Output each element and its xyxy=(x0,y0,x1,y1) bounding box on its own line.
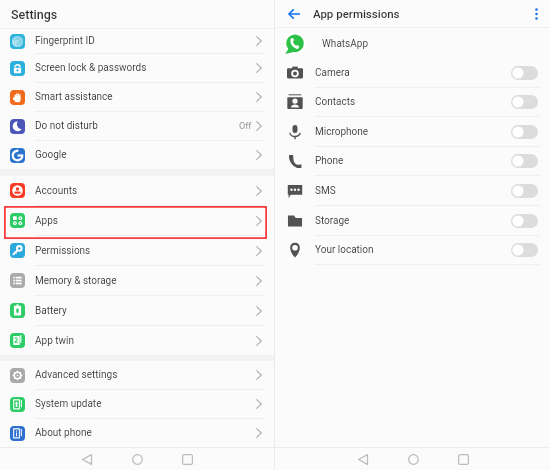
button[interactable]: Recents xyxy=(438,448,488,470)
staticText: Screen lock & passwords xyxy=(35,62,147,74)
staticText: Microphone xyxy=(315,126,369,138)
staticText: Advanced settings xyxy=(35,369,118,381)
button[interactable]: Apps xyxy=(0,206,274,235)
button[interactable]: More options xyxy=(522,0,550,27)
staticText: Do not disturb xyxy=(35,120,98,132)
button[interactable]: Home xyxy=(388,448,438,470)
button[interactable]: Microphone xyxy=(275,117,550,146)
staticText: Settings xyxy=(11,7,58,22)
button[interactable]: Home xyxy=(112,448,162,470)
button[interactable]: Accounts xyxy=(0,176,274,205)
button[interactable]: Toggle xyxy=(511,243,538,257)
button[interactable]: Back xyxy=(338,448,388,470)
button[interactable]: Back xyxy=(275,0,313,27)
button[interactable]: Toggle xyxy=(511,95,538,109)
staticText: Storage xyxy=(315,215,350,227)
button[interactable]: Phone xyxy=(275,147,550,175)
button[interactable]: Contacts xyxy=(275,88,550,116)
staticText: System update xyxy=(35,398,102,410)
staticText: WhatsApp xyxy=(322,38,369,50)
button[interactable]: Your location xyxy=(275,236,550,264)
button[interactable]: Storage xyxy=(275,206,550,235)
staticText: Memory & storage xyxy=(35,275,117,287)
staticText: About phone xyxy=(35,427,92,439)
button[interactable]: SMS xyxy=(275,176,550,205)
staticText: Your location xyxy=(315,244,374,256)
button[interactable]: Advanced settings xyxy=(0,361,274,389)
button[interactable]: Smart assistance xyxy=(0,83,274,111)
button[interactable]: About phone xyxy=(0,419,274,447)
button[interactable]: Permissions xyxy=(0,236,274,265)
button[interactable]: App twin xyxy=(0,326,274,355)
button[interactable]: Camera xyxy=(275,59,550,87)
staticText: SMS xyxy=(315,185,336,197)
button[interactable]: System update xyxy=(0,390,274,418)
staticText: Battery xyxy=(35,305,67,317)
staticText: Apps xyxy=(35,215,58,227)
staticText: App permissions xyxy=(313,7,400,20)
staticText: App twin xyxy=(35,335,74,347)
button[interactable]: Google xyxy=(0,141,274,169)
button[interactable]: Fingerprint ID xyxy=(0,29,274,53)
button[interactable]: Toggle xyxy=(511,214,538,228)
staticText: Accounts xyxy=(35,185,78,197)
button[interactable]: Recents xyxy=(162,448,212,470)
staticText: Fingerprint ID xyxy=(35,35,95,47)
button[interactable]: Battery xyxy=(0,296,274,325)
button[interactable]: Do not disturb xyxy=(0,112,274,140)
button[interactable]: Memory & storage xyxy=(0,266,274,295)
staticText: Google xyxy=(35,149,67,161)
button[interactable]: Screen lock & passwords xyxy=(0,54,274,82)
button[interactable]: Toggle xyxy=(511,125,538,139)
staticText: Camera xyxy=(315,67,350,79)
staticText: Contacts xyxy=(315,96,356,108)
staticText: Smart assistance xyxy=(35,91,113,103)
button[interactable]: Toggle xyxy=(511,66,538,80)
button[interactable]: WhatsApp xyxy=(275,28,550,59)
staticText: Off xyxy=(239,121,252,132)
staticText: Permissions xyxy=(35,245,91,257)
button[interactable]: Back xyxy=(62,448,112,470)
button[interactable]: Toggle xyxy=(511,184,538,198)
button[interactable]: Toggle xyxy=(511,154,538,168)
staticText: Phone xyxy=(315,155,344,167)
